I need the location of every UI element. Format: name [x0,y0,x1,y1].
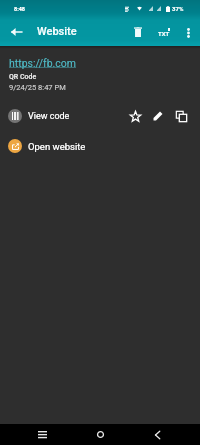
button[interactable]: Edit [147,105,169,127]
staticText: QR Code [9,73,37,81]
staticText: 8:48 [14,6,26,12]
button[interactable]: Recent apps [30,424,54,445]
staticText: Website [37,25,77,38]
button[interactable]: Open website [0,131,200,161]
button[interactable]: Export as TXT [151,19,177,45]
button[interactable]: Favorite [124,105,146,127]
button[interactable]: Back [145,424,169,445]
button[interactable]: More options [177,21,200,44]
staticText: View code [28,111,70,122]
button[interactable]: Home [88,424,112,445]
staticText: https://fb.com [9,57,77,69]
staticText: Open website [28,141,86,152]
button[interactable]: View code [0,101,200,131]
button[interactable]: Copy [170,105,192,127]
staticText: 9/24/25 8:47 PM [9,83,66,92]
button[interactable]: Delete [125,19,151,45]
staticText: 37% [172,5,184,12]
button[interactable]: Navigate up [2,18,30,46]
staticText: TXT [158,30,170,37]
